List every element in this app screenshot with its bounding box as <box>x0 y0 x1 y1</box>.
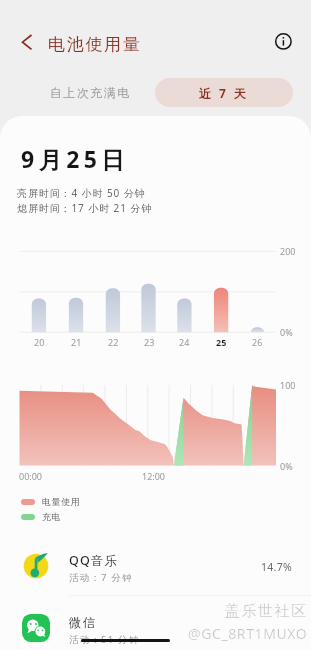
button[interactable]: 微信 <box>0 600 311 650</box>
staticText: 24 <box>179 336 190 348</box>
staticText: 14.7% <box>261 560 293 574</box>
staticText: 活动：51 分钟 <box>69 633 140 646</box>
button[interactable]: QQ音乐 <box>0 538 311 594</box>
button[interactable]: 近 7 天 <box>155 78 293 107</box>
button[interactable]: Back <box>12 27 42 57</box>
staticText: 微信 <box>69 615 97 631</box>
button[interactable]: 自上次充满电 <box>17 78 155 107</box>
staticText: 0% <box>280 326 293 338</box>
staticText: 12:00 <box>142 470 166 482</box>
staticText: 26 <box>252 336 263 348</box>
staticText: 亮屏时间：4 小时 50 分钟 <box>17 186 146 200</box>
staticText: 电池使用量 <box>48 34 142 55</box>
staticText: 21 <box>71 336 82 348</box>
button[interactable]: Info <box>271 29 296 54</box>
staticText: 电量使用 <box>42 496 81 507</box>
staticText: 100 <box>280 379 296 391</box>
staticText: 近 7 天 <box>199 85 249 101</box>
staticText: 25 <box>216 336 227 348</box>
staticText: 23 <box>144 336 155 348</box>
staticText: 9月25日 <box>21 143 129 174</box>
staticText: 0% <box>280 460 293 472</box>
staticText: 00:00 <box>19 470 43 482</box>
staticText: 充电 <box>42 511 62 522</box>
staticText: 200 <box>280 245 296 257</box>
staticText: 活动：7 分钟 <box>69 571 133 584</box>
staticText: @GC_8RT1MUXO <box>188 624 308 643</box>
staticText: 自上次充满电 <box>49 85 130 100</box>
staticText: 熄屏时间：17 小时 21 分钟 <box>17 201 153 215</box>
staticText: QQ音乐 <box>69 552 119 569</box>
staticText: 盖乐世社区 <box>224 602 307 621</box>
staticText: 22 <box>108 336 119 348</box>
staticText: 20 <box>34 336 45 348</box>
